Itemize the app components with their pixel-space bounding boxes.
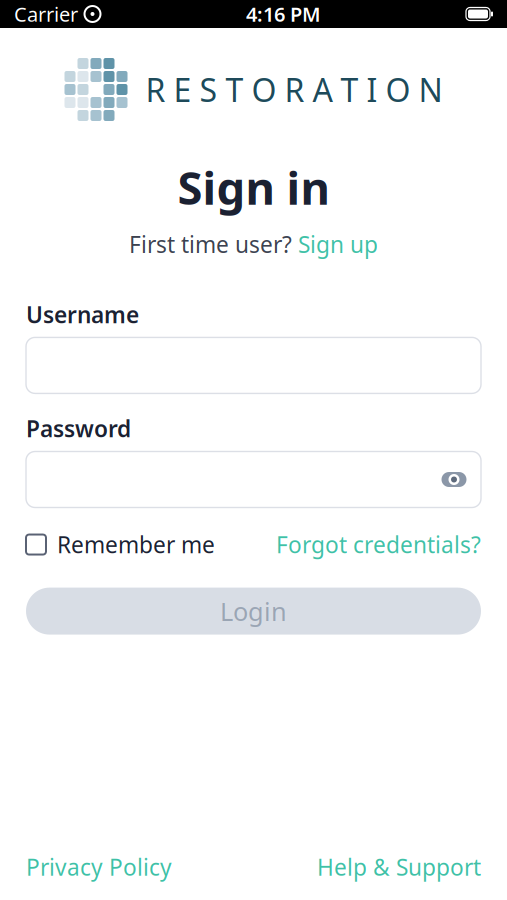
staticText: Forgot credentials? xyxy=(276,529,481,560)
staticText: Carrier xyxy=(14,1,78,27)
button[interactable]: Forgot credentials? xyxy=(276,529,481,560)
staticText: Login xyxy=(220,594,287,628)
button[interactable]: Privacy Policy xyxy=(26,852,172,882)
staticText: R E S T O R A T I O N xyxy=(145,68,442,111)
staticText: Sign in xyxy=(177,157,329,217)
staticText: First time user? xyxy=(129,229,292,259)
staticText: 4:16 PM xyxy=(246,1,321,27)
button[interactable]: Show password xyxy=(437,462,471,496)
staticText: Remember me xyxy=(57,529,215,560)
staticText: Username xyxy=(26,299,139,329)
staticText: Sign up xyxy=(298,229,378,259)
button[interactable]: Sign up xyxy=(298,229,378,259)
staticText: Privacy Policy xyxy=(26,852,172,882)
button[interactable]: Help & Support xyxy=(317,852,481,882)
staticText: Help & Support xyxy=(317,852,481,882)
button[interactable]: Username field xyxy=(26,337,481,393)
button[interactable]: Remember me xyxy=(26,529,215,560)
staticText: Password xyxy=(26,413,131,443)
button[interactable]: Login xyxy=(26,588,481,635)
